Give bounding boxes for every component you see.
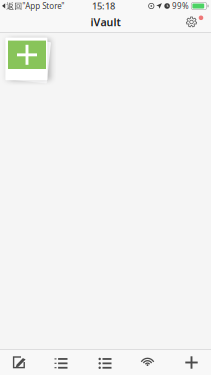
button[interactable]: Add item bbox=[1, 35, 51, 83]
staticText: 99% bbox=[172, 1, 189, 11]
button[interactable]: Compose bbox=[0, 350, 42, 375]
button[interactable]: Settings bbox=[182, 13, 200, 31]
staticText: 15:18 bbox=[92, 0, 115, 12]
staticText: 返回"App Store" bbox=[6, 1, 64, 11]
button[interactable]: Numbered list bbox=[42, 350, 84, 375]
button[interactable]: Bulleted list bbox=[84, 350, 127, 375]
staticText: iVault bbox=[90, 15, 120, 29]
button[interactable]: Add bbox=[169, 350, 211, 375]
button[interactable]: Wi-Fi transfer bbox=[127, 350, 169, 375]
